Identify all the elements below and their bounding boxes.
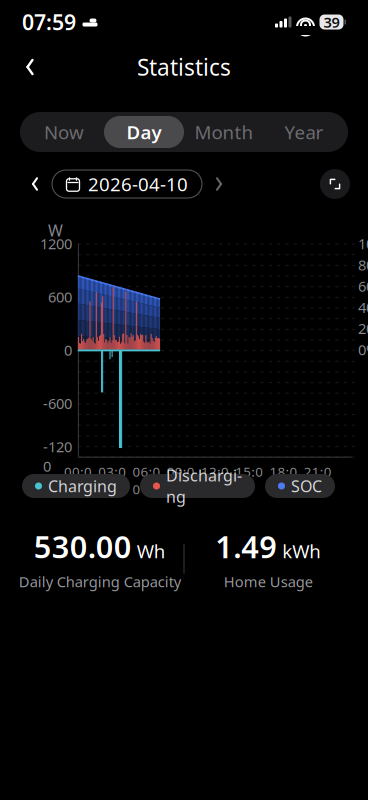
staticText: 0 (64, 340, 72, 360)
staticText: 20% (358, 319, 368, 338)
staticText: 03:00 (98, 463, 126, 498)
staticText: Home Usage (224, 572, 313, 591)
staticText: Month (194, 120, 253, 144)
staticText: Statistics (137, 52, 231, 82)
staticText: Day (126, 120, 161, 144)
staticText: -1200 (43, 437, 72, 476)
staticText: 06:00 (132, 463, 160, 498)
staticText: 0% (358, 340, 368, 359)
staticText: 07:59 (22, 8, 76, 36)
staticText: SOC (291, 475, 322, 497)
staticText: W (48, 220, 63, 241)
button[interactable]: 2026-04-10 (52, 170, 202, 198)
button[interactable]: Month (184, 116, 264, 148)
staticText: 40% (358, 297, 368, 317)
staticText: 00:00 (64, 463, 92, 498)
staticText: 15:00 (235, 463, 263, 498)
staticText: 12:00 (201, 463, 229, 498)
button[interactable]: Next day (202, 167, 236, 201)
button[interactable]: Expand chart (320, 169, 350, 199)
staticText: 60% (358, 276, 368, 296)
button[interactable]: Day (104, 116, 184, 148)
staticText: kWh (282, 539, 321, 563)
staticText: 09:00 (167, 463, 195, 498)
staticText: 39 (323, 12, 339, 32)
staticText: Year (284, 120, 323, 144)
staticText: Wh (137, 539, 166, 563)
staticText: 600 (48, 287, 72, 307)
button[interactable]: Back (8, 45, 52, 89)
button[interactable]: Year (264, 116, 344, 148)
staticText: Daily Charging Capacity (19, 572, 181, 591)
staticText: 1200 (40, 234, 72, 253)
staticText: 2026-04-10 (88, 172, 188, 196)
button[interactable]: Previous day (18, 167, 52, 201)
staticText: 80% (358, 255, 368, 275)
button[interactable]: Now (24, 116, 104, 148)
staticText: 530.00 (34, 526, 132, 567)
staticText: Discharging (166, 465, 242, 507)
button[interactable]: Discharging (140, 474, 255, 498)
staticText: 1.49 (215, 526, 277, 567)
button[interactable]: SOC (265, 474, 335, 498)
staticText: 100% (358, 234, 368, 253)
staticText: Charging (48, 475, 117, 497)
staticText: 21:00 (304, 463, 332, 498)
staticText: Now (44, 120, 84, 144)
button[interactable]: Charging (22, 474, 130, 498)
staticText: -600 (43, 393, 72, 413)
staticText: 18:00 (269, 463, 297, 498)
